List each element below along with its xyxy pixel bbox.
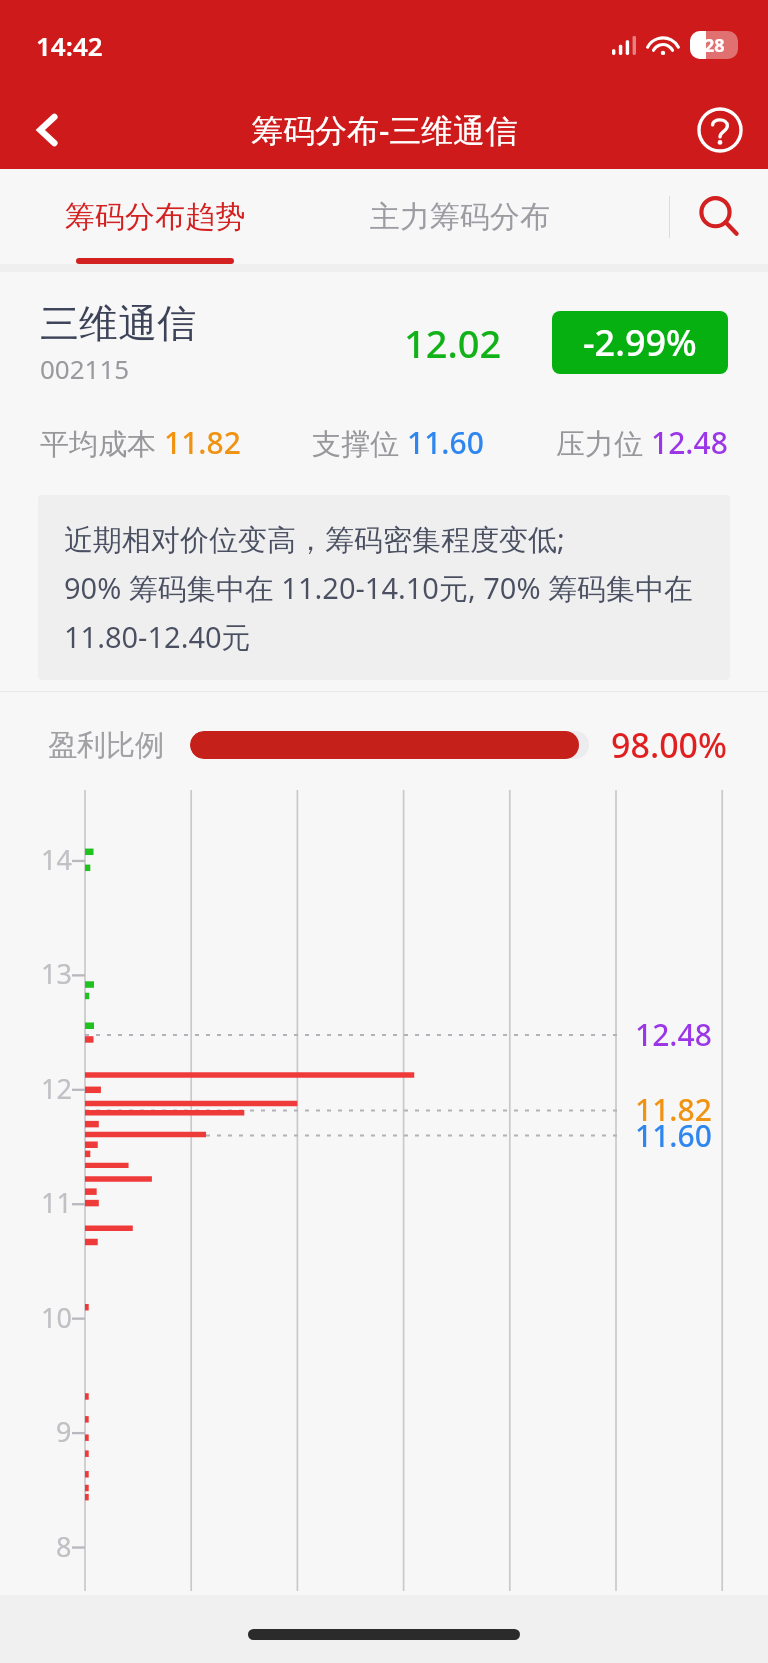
staticText: 近期相对价位变高，筹码密集程度变低; 90% 筹码集中在 11.20-14.10… xyxy=(64,519,704,656)
staticText: 主力筹码分布 xyxy=(370,198,550,236)
staticText: 盈利比例 xyxy=(48,727,164,764)
staticText: 14 xyxy=(41,841,72,878)
button[interactable]: Back xyxy=(14,96,82,164)
staticText: 平均成本 xyxy=(40,423,164,463)
staticText: 12 xyxy=(41,1070,72,1107)
staticText: 10 xyxy=(41,1299,72,1336)
staticText: 11.82 xyxy=(635,1089,712,1130)
button[interactable]: -2.99% xyxy=(552,311,728,374)
staticText: 12.02 xyxy=(404,317,502,369)
staticText: 压力位 xyxy=(556,423,651,463)
staticText: 12.48 xyxy=(651,422,728,463)
staticText: 8 xyxy=(56,1528,72,1565)
staticText: 13 xyxy=(41,955,72,992)
staticText: 筹码分布趋势 xyxy=(65,198,245,236)
staticText: 11.82 xyxy=(164,422,241,463)
staticText: 筹码分布-三维通信 xyxy=(251,108,518,152)
staticText: 98.00% xyxy=(611,722,728,768)
staticText: 12.48 xyxy=(635,1014,712,1055)
staticText: 支撑位 xyxy=(312,423,407,463)
staticText: -2.99% xyxy=(583,318,697,367)
button[interactable]: Search xyxy=(670,169,768,264)
button[interactable]: Help xyxy=(686,96,754,164)
staticText: 11 xyxy=(41,1184,72,1221)
button[interactable]: 主力筹码分布 xyxy=(310,169,610,264)
staticText: 11.60 xyxy=(407,422,484,463)
staticText: 002115 xyxy=(40,351,130,386)
staticText: 14:42 xyxy=(36,28,103,63)
staticText: 9 xyxy=(56,1413,72,1450)
staticText: 三维通信 xyxy=(40,299,196,348)
button[interactable]: 筹码分布趋势 xyxy=(0,169,310,264)
staticText: 11.60 xyxy=(635,1115,712,1156)
staticText: 28 xyxy=(704,33,725,58)
